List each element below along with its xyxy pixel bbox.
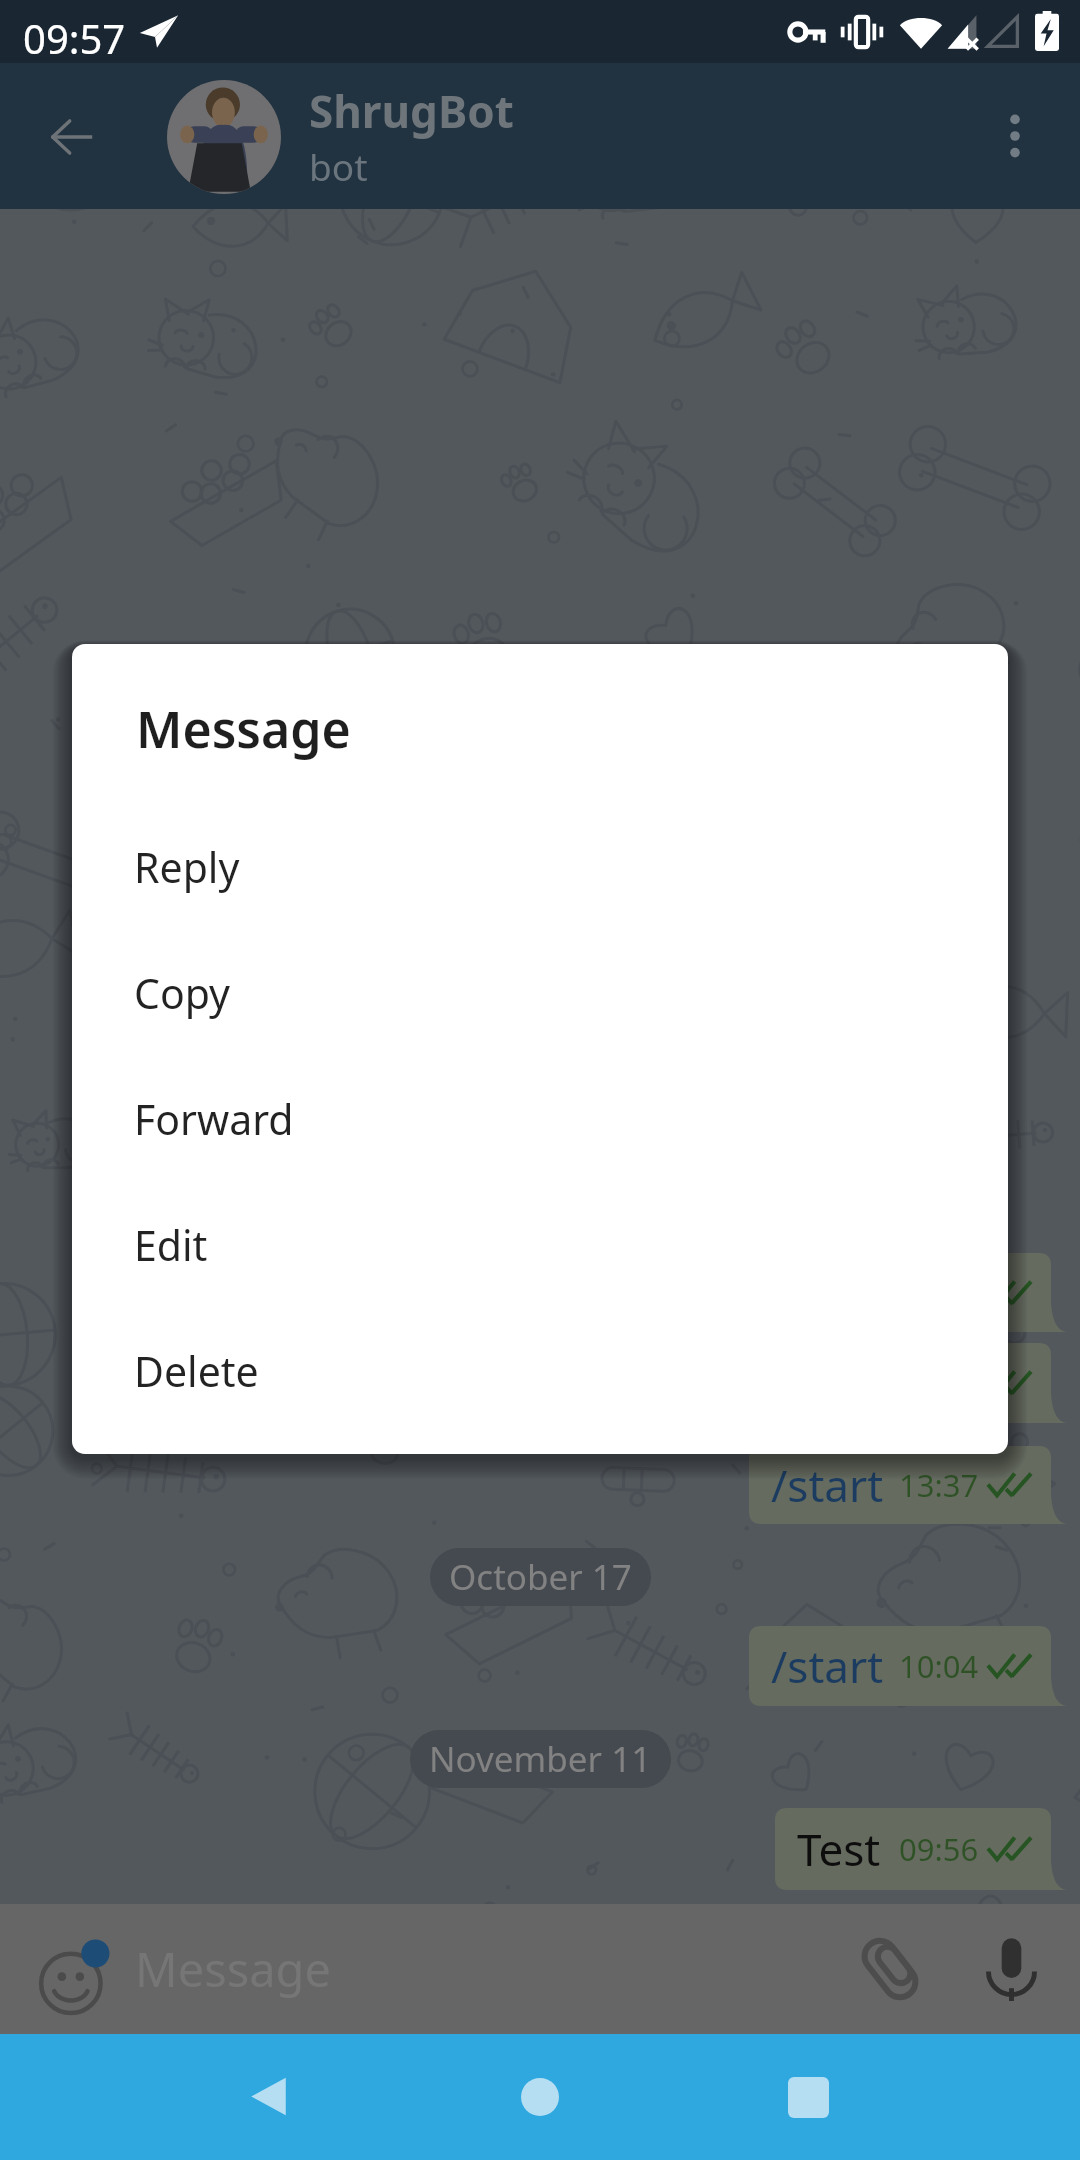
button[interactable]: Record voice message <box>987 1937 1036 2001</box>
staticText: Reply <box>134 839 240 895</box>
button[interactable]: Back <box>10 83 134 189</box>
button[interactable]: More options <box>950 71 1080 201</box>
staticText: /start <box>771 1636 884 1696</box>
button[interactable]: Copy <box>72 930 1008 1056</box>
staticText: Test <box>797 1819 881 1879</box>
button[interactable]: Recent apps <box>747 2036 869 2158</box>
button[interactable]: Edit <box>72 1182 1008 1308</box>
button[interactable]: Delete <box>72 1308 1008 1434</box>
staticText: /start <box>771 1455 884 1515</box>
staticText: October 17 <box>449 1553 632 1601</box>
button[interactable]: Attach <box>858 1936 922 2002</box>
staticText: Message <box>136 695 351 763</box>
button[interactable]: Back <box>207 2036 329 2158</box>
button[interactable]: Reply <box>72 804 1008 930</box>
staticText: 10:04 <box>899 1645 979 1687</box>
staticText: Message <box>135 1937 331 2001</box>
staticText: bot <box>309 141 368 191</box>
staticText: Copy <box>134 965 231 1021</box>
staticText: ShrugBot <box>309 81 514 141</box>
button[interactable]: Emoji <box>38 1924 128 2014</box>
staticText: Forward <box>134 1091 294 1147</box>
button[interactable]: Forward <box>72 1056 1008 1182</box>
staticText: Edit <box>134 1217 208 1273</box>
staticText: 09:57 <box>23 11 126 65</box>
button[interactable]: Home <box>479 2036 601 2158</box>
staticText: Delete <box>134 1343 259 1399</box>
staticText: 09:56 <box>899 1828 979 1870</box>
staticText: 13:37 <box>899 1464 979 1506</box>
button[interactable] <box>150 63 880 209</box>
staticText: November 11 <box>429 1735 652 1783</box>
